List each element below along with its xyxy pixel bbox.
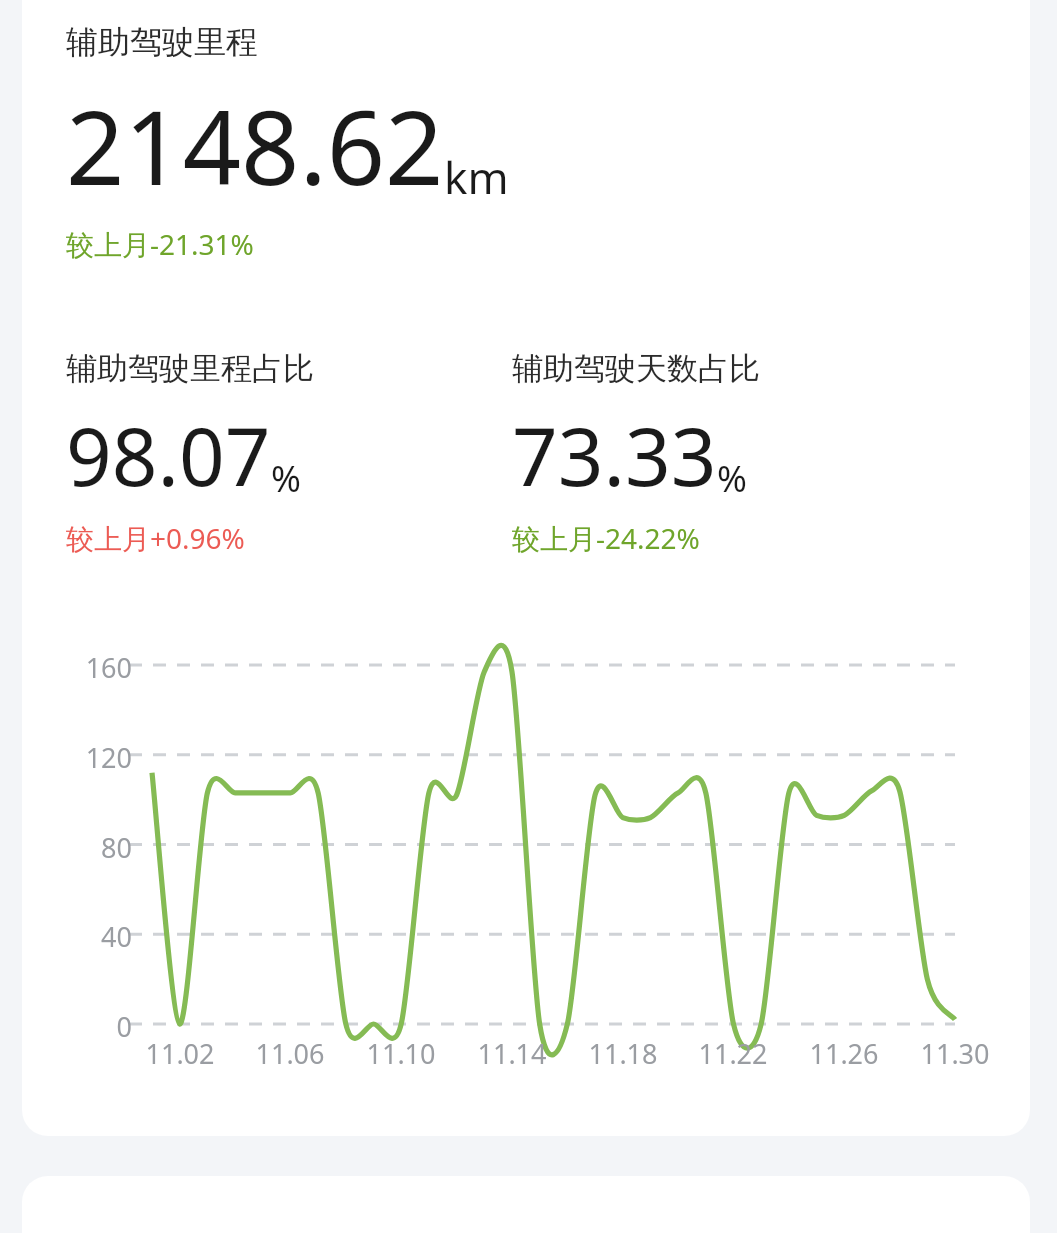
staticText: 11.10 [341,1035,461,1072]
staticText: % [271,454,301,503]
staticText: 11.06 [230,1035,350,1072]
button[interactable]: 辅助驾驶天数占比 [512,349,982,557]
staticText: % [717,454,747,503]
staticText: km [444,147,509,207]
staticText: 辅助驾驶里程 [66,22,258,62]
staticText: 0 [22,1008,132,1045]
staticText: 辅助驾驶里程占比 [66,349,314,388]
staticText: 120 [22,739,132,776]
staticText: 较上月-21.31% [66,225,254,263]
button[interactable]: 辅助驾驶里程 [22,0,1030,1136]
button[interactable]: 辅助驾驶里程占比 [66,349,512,557]
staticText: 98.07 [66,400,271,509]
staticText: 40 [22,918,132,955]
staticText: 11.18 [563,1035,683,1072]
staticText: 11.30 [895,1035,1015,1072]
staticText: 80 [22,829,132,866]
staticText: 11.22 [673,1035,793,1072]
staticText: 11.14 [452,1035,572,1072]
staticText: 辅助驾驶天数占比 [512,349,760,388]
staticText: 11.02 [120,1035,240,1072]
staticText: 160 [22,649,132,686]
staticText: 2148.62 [66,76,444,215]
staticText: 较上月-24.22% [512,519,700,557]
staticText: 73.33 [512,400,717,509]
staticText: 11.26 [784,1035,904,1072]
staticText: 较上月+0.96% [66,519,245,557]
